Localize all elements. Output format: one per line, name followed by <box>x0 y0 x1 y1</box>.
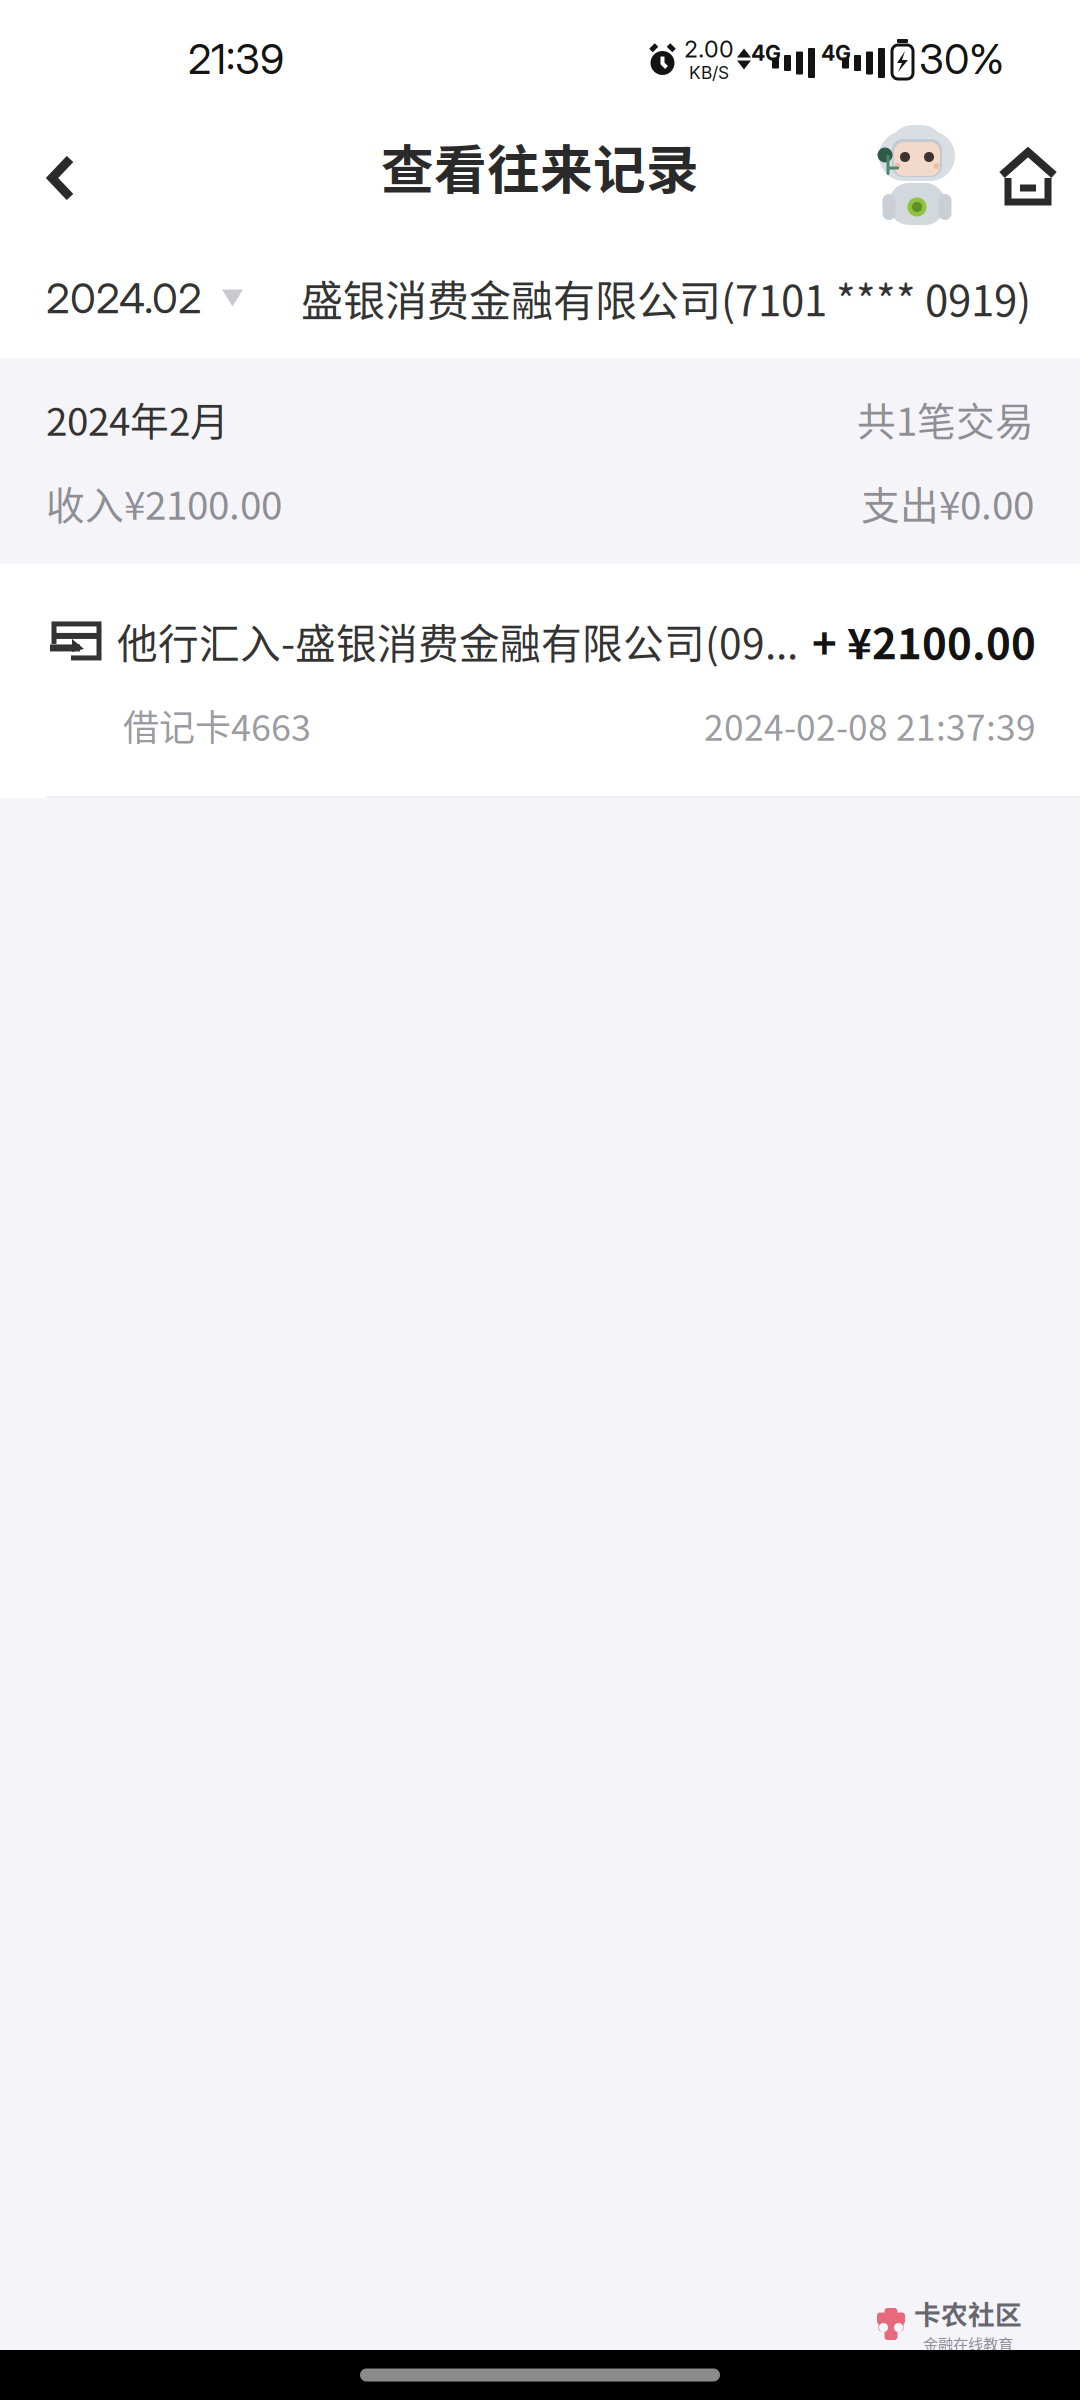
staticText: 卡农社区 <box>914 2294 1022 2332</box>
staticText: 2024年2月 <box>46 391 229 447</box>
staticText: 借记卡4663 <box>123 699 311 751</box>
staticText: 查看往来记录 <box>381 128 699 204</box>
staticText: 21:39 <box>188 34 284 84</box>
staticText: 支出¥0.00 <box>861 475 1034 531</box>
button[interactable]: 首页 <box>976 118 1080 238</box>
staticText: 他行汇入-盛银消费金融有限公司(09... <box>117 611 798 670</box>
button[interactable]: 智能客服 <box>858 118 976 238</box>
staticText: + ¥2100.00 <box>812 610 1036 671</box>
staticText: 4G <box>751 40 781 66</box>
staticText: 4G <box>821 40 851 66</box>
staticText: KB/S <box>689 62 729 83</box>
button[interactable]: 他行汇入-盛银消费金融有限公司(09... <box>0 564 1080 798</box>
staticText: 金融在线教育 <box>923 2332 1013 2354</box>
staticText: 2024.02 <box>46 273 202 323</box>
staticText: 2.00 <box>684 35 734 63</box>
button[interactable]: 返回 <box>0 118 122 238</box>
staticText: 盛银消费金融有限公司(7101 **** 0919) <box>301 268 1031 328</box>
button[interactable]: 2024.02 <box>0 238 1080 358</box>
staticText: 30% <box>919 34 1004 84</box>
staticText: 共1笔交易 <box>857 391 1034 447</box>
staticText: 收入¥2100.00 <box>46 475 282 531</box>
staticText: 2024-02-08 21:37:39 <box>704 700 1036 751</box>
